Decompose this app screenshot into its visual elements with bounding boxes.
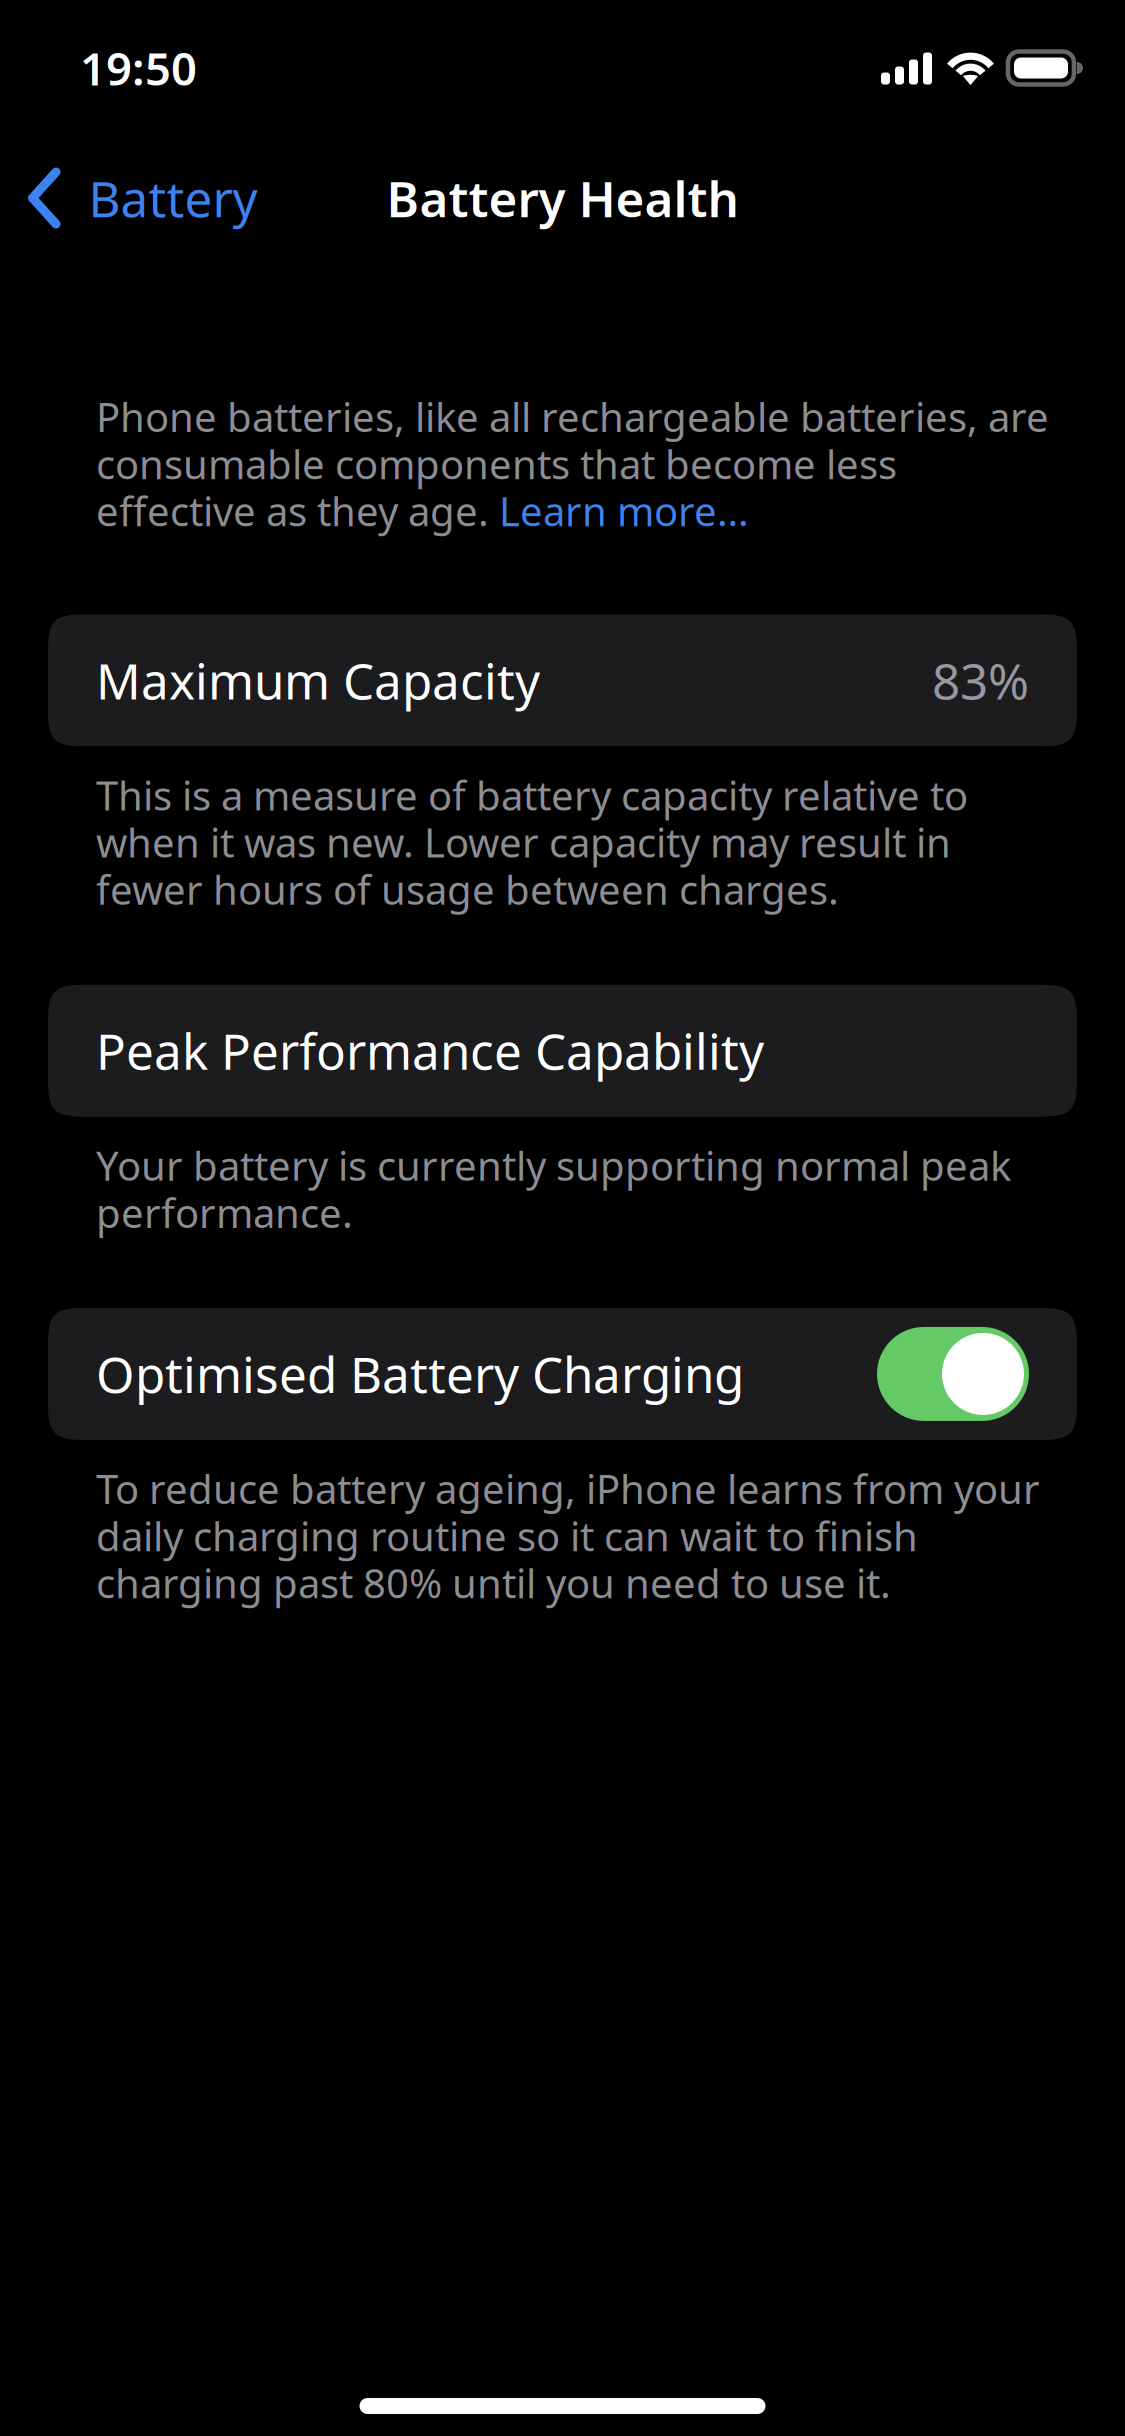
staticText: effective as they age. bbox=[96, 484, 499, 537]
staticText: Peak Performance Capability bbox=[96, 1018, 764, 1083]
staticText: Optimised Battery Charging bbox=[96, 1341, 744, 1407]
button[interactable]: Battery bbox=[0, 132, 277, 264]
staticText: 19:50 bbox=[80, 38, 197, 98]
staticText: This is a measure of battery capacity re… bbox=[96, 768, 968, 916]
staticText: Battery Health bbox=[386, 165, 738, 231]
staticText: 83% bbox=[932, 648, 1029, 713]
staticText: Maximum Capacity bbox=[96, 648, 540, 713]
button[interactable]: Learn more… bbox=[499, 484, 749, 537]
staticText: Battery bbox=[88, 165, 257, 231]
button[interactable]: Maximum Capacity bbox=[48, 614, 1077, 746]
button[interactable]: Peak Performance Capability bbox=[48, 985, 1077, 1117]
staticText: Learn more… bbox=[499, 484, 749, 537]
button[interactable]: Optimised Battery Charging bbox=[48, 1308, 1077, 1440]
staticText: Phone batteries, like all rechargeable b… bbox=[96, 390, 1049, 443]
staticText: consumable components that become less bbox=[96, 437, 897, 490]
staticText: Your battery is currently supporting nor… bbox=[96, 1139, 1011, 1239]
staticText: To reduce battery ageing, iPhone learns … bbox=[96, 1462, 1040, 1609]
